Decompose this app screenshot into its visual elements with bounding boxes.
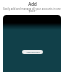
staticText: Add [28, 1, 37, 7]
button[interactable]: Add account [22, 50, 43, 54]
staticText: Add account [26, 51, 40, 54]
staticText: Easily add and manage all your accounts … [1, 7, 63, 13]
